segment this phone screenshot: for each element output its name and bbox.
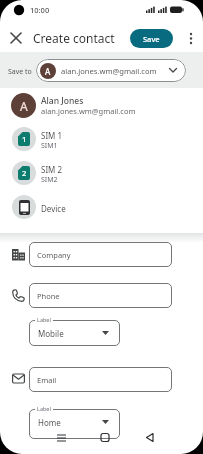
button[interactable]: Company	[29, 242, 172, 267]
button[interactable]	[50, 432, 75, 444]
staticText: SIM2	[41, 175, 58, 185]
button[interactable]: Phone	[29, 283, 172, 308]
button[interactable]: Home	[29, 409, 120, 439]
staticText: Phone	[37, 291, 60, 301]
button[interactable]: Save	[130, 29, 173, 48]
staticText: Email	[37, 375, 57, 385]
staticText: alan.jones.wm@gmail.com	[61, 66, 157, 76]
staticText: Device	[41, 203, 66, 214]
button[interactable]: 2	[0, 156, 203, 190]
staticText: SIM1	[41, 141, 58, 151]
staticText: 2	[22, 168, 27, 178]
staticText: Company	[37, 250, 71, 260]
button[interactable]: Email	[29, 367, 172, 392]
staticText: SIM 2	[41, 164, 63, 175]
staticText: Home	[38, 417, 61, 428]
staticText: Mobile	[38, 328, 64, 339]
button[interactable]: A	[0, 88, 203, 122]
staticText: 10:00	[30, 5, 50, 15]
staticText: Label	[37, 316, 51, 323]
staticText: SIM 1	[41, 130, 63, 141]
staticText: Alan Jones	[41, 95, 84, 107]
staticText: Save	[143, 34, 160, 44]
staticText: Create contact	[33, 30, 115, 46]
button[interactable]	[8, 30, 24, 46]
staticText: 1	[22, 134, 27, 144]
staticText: A	[45, 66, 51, 77]
staticText: alan.jones.wm@gmail.com	[41, 106, 136, 116]
button[interactable]	[95, 432, 115, 444]
button[interactable]	[140, 432, 160, 444]
staticText: A	[20, 98, 28, 114]
button[interactable]: Mobile	[29, 320, 120, 346]
button[interactable]	[186, 29, 196, 48]
button[interactable]: Device	[0, 190, 203, 224]
staticText: Save to	[8, 67, 32, 77]
button[interactable]: A	[36, 59, 186, 82]
button[interactable]: 1	[0, 122, 203, 156]
staticText: Label	[37, 405, 51, 412]
